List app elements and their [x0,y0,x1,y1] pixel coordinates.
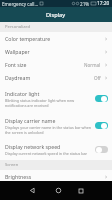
button[interactable]: Wallpaper [0,45,112,58]
staticText: Brightness [5,173,32,180]
staticText: Display [46,11,66,19]
button[interactable]: Daydream [0,71,112,84]
button[interactable]: Brightness [0,170,112,183]
staticText: Display current network speed in the sta… [5,151,88,156]
button[interactable]: Display network speed [0,138,112,160]
staticText: Emergency call... [2,1,39,7]
staticText: 17:20 [97,0,110,7]
staticText: Indicator light [5,90,40,97]
button[interactable]: Indicator light [0,84,112,113]
button[interactable]: Home [48,181,68,200]
staticText: Wallpaper [5,48,30,55]
staticText: Displays your carrier name in the status… [5,125,95,135]
staticText: Off [94,75,101,81]
staticText: 21% [80,1,90,7]
button[interactable]: Font size [0,58,112,71]
staticText: Display network speed [5,143,61,150]
button[interactable]: Color temperature [0,32,112,45]
staticText: Color temperature [5,35,51,42]
staticText: Blinking status indicator light when new… [5,98,95,108]
staticText: Font size [5,61,27,68]
staticText: Personalized [5,24,31,30]
staticText: Screen [5,162,19,168]
staticText: Normal [84,62,101,68]
button[interactable]: Back [22,181,42,200]
button[interactable]: Recents [71,181,91,200]
button[interactable]: Display carrier name [0,113,112,138]
staticText: Display carrier name [5,117,56,124]
staticText: Daydream [5,74,31,81]
